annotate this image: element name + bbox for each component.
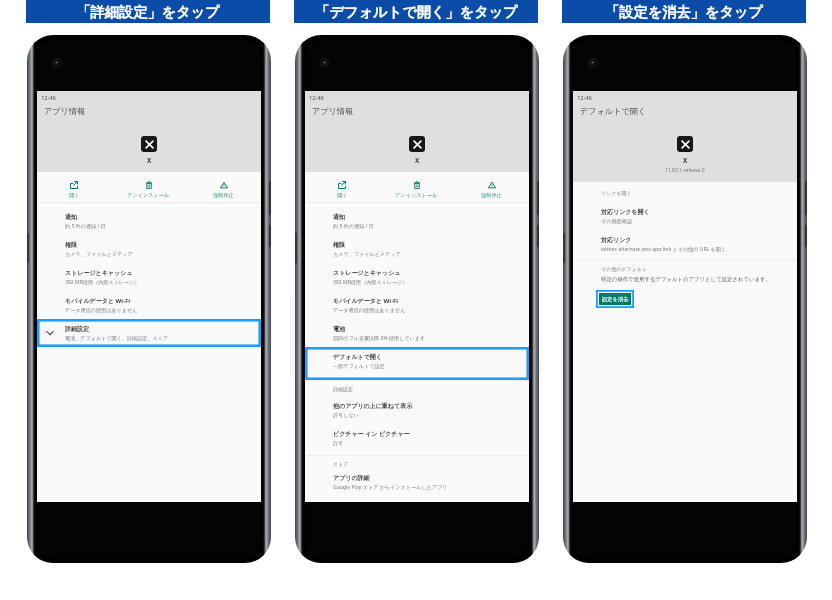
staticText: デフォルトで開く: [580, 106, 647, 116]
staticText: ストレージとキャッシュ: [65, 269, 133, 277]
staticText: 特定の操作で使用するデフォルトのアプリとして設定されています。: [601, 276, 771, 283]
staticText: その都度確認: [601, 218, 632, 224]
staticText: 詳細設定: [65, 325, 89, 333]
staticText: 対応リンク: [601, 236, 632, 244]
staticText: 12:46: [41, 94, 56, 102]
staticText: 設定を消去: [602, 296, 629, 303]
staticText: アプリの詳細: [333, 474, 370, 482]
staticText: 電池: [333, 325, 345, 333]
staticText: 他のアプリの上に重ねて表示: [333, 402, 413, 410]
button[interactable]: 通知: [37, 207, 261, 235]
staticText: 「設定を消去」をタップ: [605, 3, 763, 21]
staticText: データ通信の使用はありません: [333, 307, 406, 313]
staticText: bamp.net: [96, 216, 793, 420]
button[interactable]: 開く: [37, 172, 111, 202]
staticText: モバイルデータと Wi-Fi: [333, 297, 399, 305]
button[interactable]: アンインストール: [111, 172, 186, 202]
staticText: 開く: [69, 192, 80, 199]
button[interactable]: モバイルデータと Wi-Fi: [37, 291, 261, 319]
button[interactable]: 通知: [305, 207, 529, 235]
button[interactable]: 強制停止: [186, 172, 261, 202]
staticText: 対応リンクを開く: [601, 208, 650, 216]
button[interactable]: 強制停止: [454, 172, 529, 202]
staticText: 11.83.1-release.0: [665, 167, 705, 174]
button[interactable]: 対応リンク: [573, 230, 797, 258]
button[interactable]: ストレージとキャッシュ: [305, 263, 529, 291]
button[interactable]: 電池: [305, 319, 529, 347]
button[interactable]: アンインストール: [379, 172, 454, 202]
staticText: 開く: [337, 192, 348, 199]
staticText: アンインストール: [127, 192, 170, 199]
button[interactable]: デフォルトで開く: [305, 347, 529, 380]
button[interactable]: 権限: [305, 235, 529, 263]
staticText: ストア: [333, 461, 349, 467]
staticText: 前回のフル充電以降 0% 使用しています: [333, 335, 426, 342]
staticText: 通知: [65, 213, 77, 221]
staticText: X: [683, 156, 688, 165]
staticText: 電池、デフォルトで開く、詳細設定、ストア: [65, 335, 169, 341]
staticText: ピクチャー イン ピクチャー: [333, 430, 410, 438]
staticText: デフォルトで開く: [333, 353, 382, 361]
staticText: カメラ、ファイルとメディア: [333, 251, 401, 257]
staticText: X: [147, 156, 152, 165]
staticText: X: [415, 156, 420, 165]
staticText: twitter-alternate.test-app.link とその他の UR…: [601, 246, 727, 253]
staticText: 12:46: [577, 94, 592, 102]
staticText: アプリ情報: [44, 106, 86, 116]
staticText: Google Play ストア からインストールしたアプリ: [333, 484, 448, 491]
staticText: 通知: [333, 213, 345, 221]
staticText: 一部デフォルトで設定: [333, 363, 385, 369]
staticText: 許可: [333, 440, 344, 446]
staticText: アンインストール: [395, 192, 438, 199]
button[interactable]: 権限: [37, 235, 261, 263]
staticText: 強制停止: [481, 192, 502, 199]
staticText: ストレージとキャッシュ: [333, 269, 401, 277]
staticText: 約 5 件の通知 / 日: [333, 223, 374, 230]
staticText: データ通信の使用はありません: [65, 307, 138, 313]
button[interactable]: モバイルデータと Wi-Fi: [305, 291, 529, 319]
staticText: 権限: [333, 241, 345, 249]
staticText: アプリ情報: [312, 106, 354, 116]
staticText: 「詳細設定」をタップ: [76, 3, 220, 21]
staticText: 382 MB使用（内部ストレージ）: [65, 279, 140, 286]
staticText: その他のデフォルト: [601, 266, 647, 272]
button[interactable]: 開く: [305, 172, 379, 202]
button[interactable]: 詳細設定: [37, 319, 261, 347]
staticText: 許可しない: [333, 412, 359, 418]
staticText: カメラ、ファイルとメディア: [65, 251, 133, 257]
staticText: 約 5 件の通知 / 日: [65, 223, 106, 230]
staticText: 強制停止: [213, 192, 234, 199]
staticText: 「デフォルトで開く」をタップ: [315, 3, 518, 21]
button[interactable]: ピクチャー イン ピクチャー: [305, 424, 529, 452]
staticText: リンクを開く: [601, 190, 632, 196]
button[interactable]: ストレージとキャッシュ: [37, 263, 261, 291]
staticText: 権限: [65, 241, 77, 249]
staticText: モバイルデータと Wi-Fi: [65, 297, 131, 305]
staticText: 詳細設定: [333, 386, 353, 392]
staticText: 12:46: [309, 94, 324, 102]
button[interactable]: 設定を消去: [599, 293, 631, 305]
button[interactable]: 対応リンクを開く: [573, 202, 797, 230]
button[interactable]: アプリの詳細: [305, 468, 529, 496]
button[interactable]: 他のアプリの上に重ねて表示: [305, 396, 529, 424]
staticText: 382 MB使用（内部ストレージ）: [333, 279, 408, 286]
